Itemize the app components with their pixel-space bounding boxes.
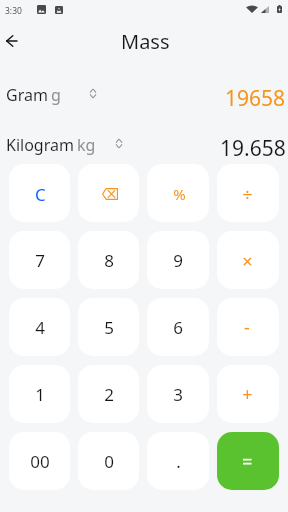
button[interactable]: Kilogram [0,124,288,173]
staticText: 3:30 [5,5,22,17]
staticText: × [242,249,253,274]
button[interactable]: 4 [9,298,70,356]
button[interactable]: 8 [78,231,139,289]
staticText: 1 [35,383,45,406]
button[interactable]: Backspace [78,164,139,222]
staticText: C [35,183,46,206]
button[interactable]: 6 [147,298,209,356]
staticText: + [242,382,253,407]
staticText: 0 [104,450,114,473]
staticText: % [173,184,186,204]
button[interactable]: 2 [78,365,139,423]
staticText: 6 [173,316,183,339]
button[interactable]: + [217,365,279,423]
button[interactable]: 9 [147,231,209,289]
button[interactable]: 00 [9,432,70,490]
staticText: ÷ [242,182,253,207]
staticText: Kilogram [6,134,74,156]
staticText: - [244,315,250,340]
staticText: 3 [173,383,183,406]
staticText: 9 [173,249,183,272]
staticText: 00 [30,450,50,473]
button[interactable]: Back [0,28,26,54]
staticText: 5 [104,316,114,339]
staticText: 19658 [225,84,286,113]
button[interactable]: - [217,298,279,356]
button[interactable]: C [9,164,70,222]
button[interactable]: ÷ [217,164,279,222]
button[interactable]: Gram [0,74,288,123]
button[interactable]: . [147,432,209,490]
button[interactable]: % [147,164,209,222]
staticText: 7 [35,249,45,272]
button[interactable]: × [217,231,279,289]
staticText: 8 [104,249,114,272]
button[interactable]: = [217,432,279,490]
button[interactable]: 7 [9,231,70,289]
staticText: Mass [121,28,170,55]
staticText: = [242,449,253,474]
button[interactable]: 1 [9,365,70,423]
staticText: kg [77,134,96,156]
staticText: Gram [6,84,48,106]
staticText: 19.658 [220,134,286,163]
button[interactable]: 0 [78,432,139,490]
button[interactable]: 5 [78,298,139,356]
staticText: 2 [104,383,114,406]
staticText: 4 [35,316,45,339]
button[interactable]: 3 [147,365,209,423]
staticText: g [51,84,61,106]
staticText: . [176,450,181,473]
